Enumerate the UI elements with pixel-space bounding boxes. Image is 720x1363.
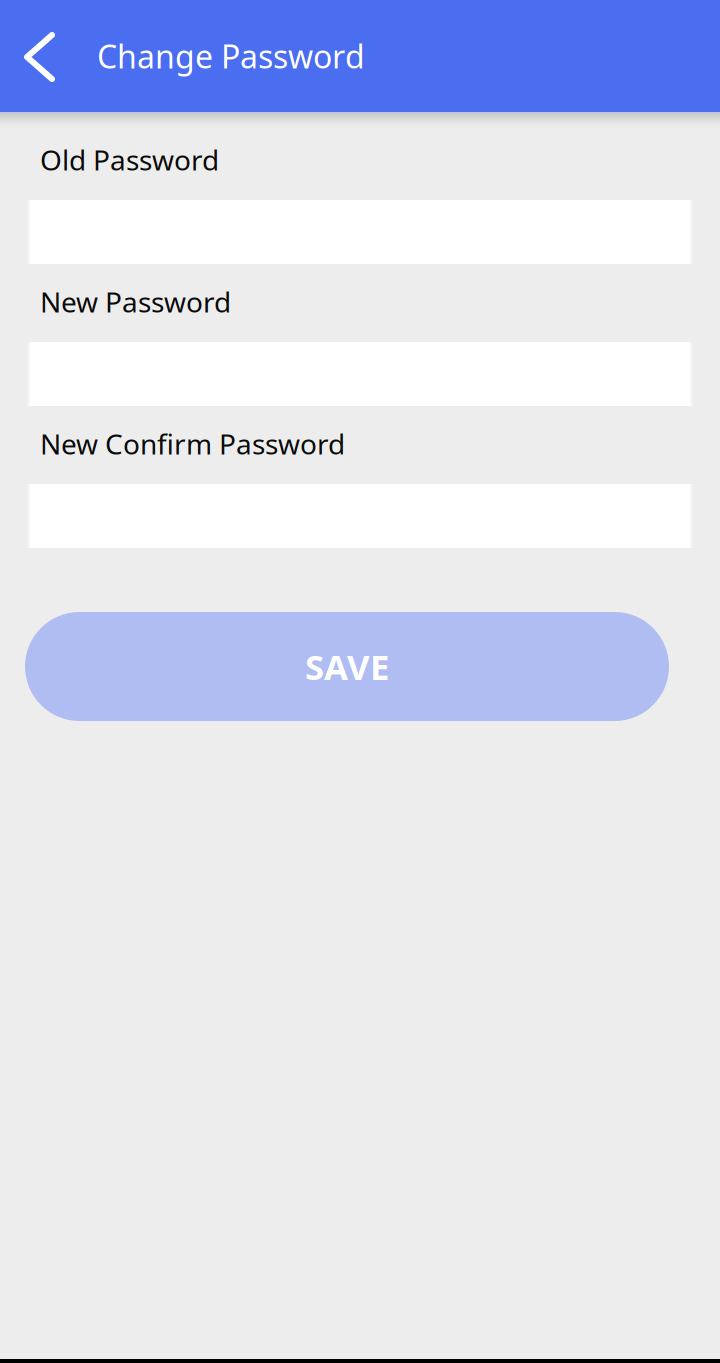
- button[interactable]: Back: [0, 0, 97, 112]
- staticText: Change Password: [97, 35, 365, 77]
- staticText: New Confirm Password: [40, 425, 345, 462]
- staticText: SAVE: [305, 643, 389, 689]
- staticText: Old Password: [40, 141, 219, 178]
- button[interactable]: SAVE: [25, 612, 669, 721]
- staticText: New Password: [40, 283, 231, 320]
